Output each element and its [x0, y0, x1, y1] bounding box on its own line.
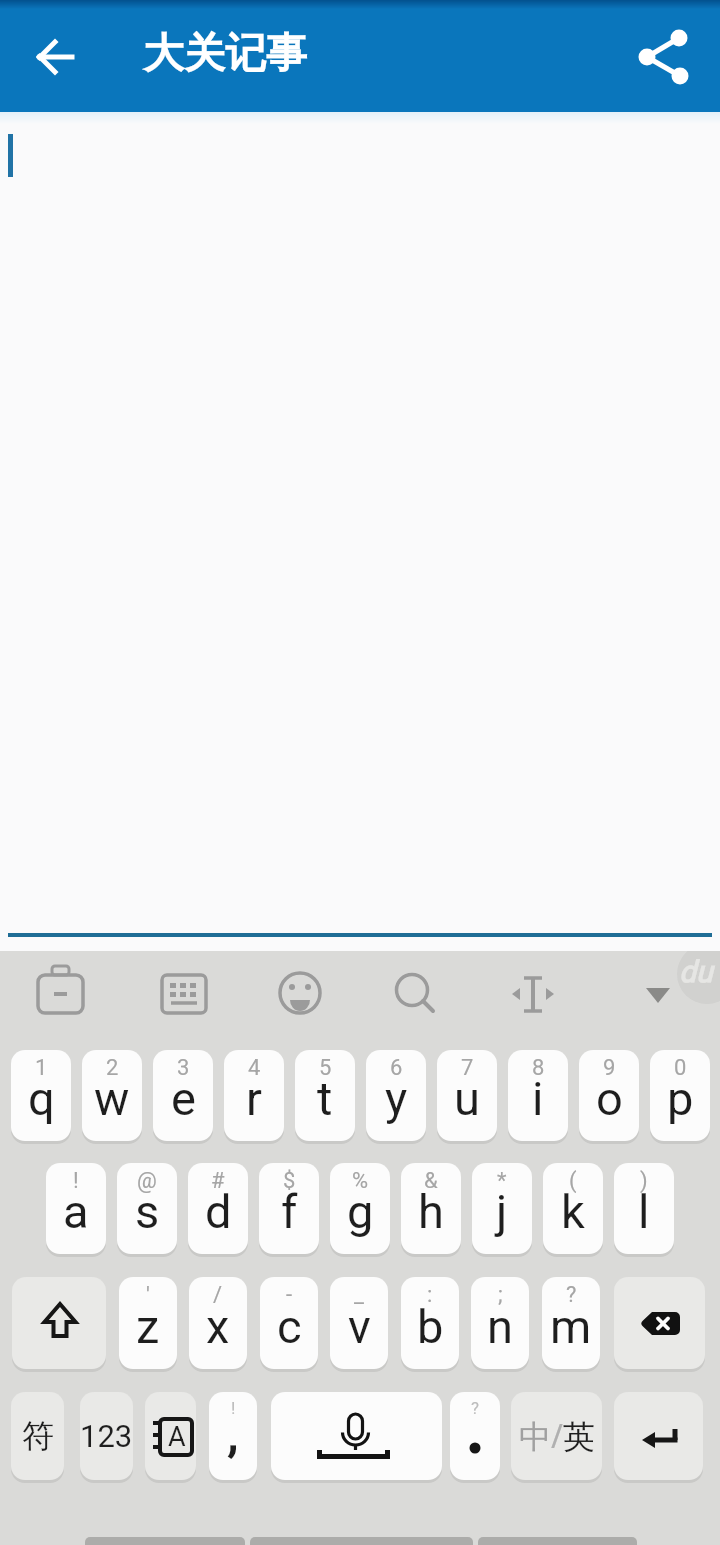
- button[interactable]: (: [543, 1163, 603, 1254]
- staticText: e: [171, 1071, 196, 1126]
- button[interactable]: [24, 25, 88, 89]
- staticText: 2: [106, 1055, 119, 1081]
- staticText: !: [73, 1168, 79, 1194]
- button[interactable]: @: [117, 1163, 177, 1254]
- staticText: u: [454, 1071, 480, 1126]
- staticText: ): [640, 1168, 648, 1194]
- staticText: 8: [532, 1055, 545, 1081]
- staticText: 大关记事: [143, 28, 307, 80]
- button[interactable]: [264, 957, 336, 1029]
- staticText: l: [638, 1184, 650, 1239]
- staticText: q: [28, 1071, 55, 1126]
- button[interactable]: 5: [295, 1050, 355, 1141]
- button[interactable]: [614, 1277, 705, 1369]
- button[interactable]: 123: [80, 1392, 133, 1480]
- staticText: @: [137, 1168, 157, 1194]
- button[interactable]: 符: [11, 1392, 64, 1480]
- staticText: *: [497, 1168, 507, 1194]
- staticText: t: [317, 1071, 333, 1126]
- button[interactable]: 6: [366, 1050, 426, 1141]
- staticText: v: [348, 1299, 371, 1354]
- staticText: g: [347, 1184, 374, 1239]
- staticText: m: [550, 1299, 592, 1354]
- staticText: z: [136, 1299, 160, 1354]
- staticText: $: [283, 1168, 296, 1194]
- staticText: 4: [248, 1055, 261, 1081]
- staticText: r: [246, 1071, 262, 1126]
- button[interactable]: [504, 957, 576, 1029]
- staticText: i: [532, 1071, 544, 1126]
- button[interactable]: 中/英: [511, 1392, 602, 1480]
- button[interactable]: !: [209, 1392, 257, 1480]
- button[interactable]: [271, 1392, 442, 1480]
- button[interactable]: &: [401, 1163, 461, 1254]
- staticText: a: [63, 1184, 89, 1239]
- staticText: 6: [390, 1055, 403, 1081]
- button[interactable]: 8: [508, 1050, 568, 1141]
- button[interactable]: :: [401, 1277, 459, 1369]
- staticText: _: [354, 1282, 364, 1308]
- button[interactable]: _: [330, 1277, 388, 1369]
- button[interactable]: ): [614, 1163, 674, 1254]
- button[interactable]: 1: [11, 1050, 71, 1141]
- button[interactable]: [144, 957, 216, 1029]
- button[interactable]: [614, 1392, 703, 1480]
- staticText: ;: [498, 1282, 503, 1308]
- staticText: p: [667, 1071, 694, 1126]
- staticText: 0: [674, 1055, 687, 1081]
- staticText: s: [135, 1184, 160, 1239]
- staticText: ,: [228, 1406, 238, 1462]
- staticText: n: [487, 1299, 513, 1354]
- button[interactable]: ;: [471, 1277, 529, 1369]
- staticText: %: [352, 1168, 369, 1194]
- button[interactable]: [24, 957, 96, 1029]
- button[interactable]: ': [119, 1277, 177, 1369]
- staticText: 5: [319, 1055, 332, 1081]
- staticText: 7: [461, 1055, 474, 1081]
- staticText: 符: [22, 1416, 54, 1456]
- staticText: 9: [603, 1055, 616, 1081]
- staticText: d: [205, 1184, 232, 1239]
- button[interactable]: 7: [437, 1050, 497, 1141]
- button[interactable]: -: [260, 1277, 318, 1369]
- staticText: A: [168, 1421, 186, 1453]
- staticText: 123: [80, 1418, 133, 1454]
- staticText: /: [213, 1282, 223, 1308]
- staticText: b: [417, 1299, 444, 1354]
- button[interactable]: !: [46, 1163, 106, 1254]
- button[interactable]: 3: [153, 1050, 213, 1141]
- staticText: c: [277, 1299, 302, 1354]
- button[interactable]: A: [145, 1392, 196, 1480]
- button[interactable]: #: [188, 1163, 248, 1254]
- staticText: du: [679, 954, 713, 989]
- button[interactable]: %: [330, 1163, 390, 1254]
- button[interactable]: /: [189, 1277, 247, 1369]
- button[interactable]: [12, 1277, 106, 1369]
- staticText: 中/英: [519, 1414, 595, 1458]
- staticText: -: [286, 1282, 293, 1308]
- button[interactable]: $: [259, 1163, 319, 1254]
- button[interactable]: 9: [579, 1050, 639, 1141]
- button[interactable]: [0, 112, 720, 951]
- staticText: &: [424, 1168, 438, 1194]
- button[interactable]: 0: [650, 1050, 710, 1141]
- button[interactable]: *: [472, 1163, 532, 1254]
- button[interactable]: ?: [450, 1392, 500, 1480]
- staticText: ': [146, 1282, 150, 1308]
- staticText: 3: [177, 1055, 190, 1081]
- button[interactable]: [627, 21, 699, 93]
- staticText: w: [94, 1071, 130, 1126]
- staticText: #: [211, 1168, 225, 1194]
- staticText: (: [569, 1168, 577, 1194]
- staticText: o: [596, 1071, 623, 1126]
- staticText: ?: [566, 1282, 577, 1308]
- button[interactable]: ?: [542, 1277, 600, 1369]
- staticText: k: [561, 1184, 585, 1239]
- button[interactable]: 4: [224, 1050, 284, 1141]
- staticText: :: [427, 1282, 433, 1308]
- button[interactable]: [624, 957, 696, 1029]
- button[interactable]: 2: [82, 1050, 142, 1141]
- staticText: y: [385, 1071, 408, 1126]
- staticText: j: [496, 1184, 508, 1239]
- button[interactable]: [384, 957, 456, 1029]
